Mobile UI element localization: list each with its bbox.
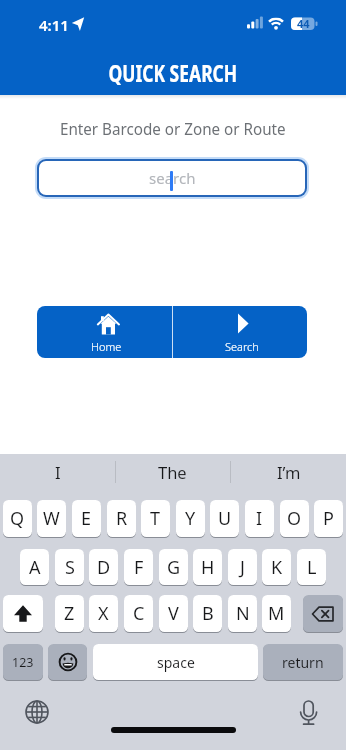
button[interactable]: [303, 595, 343, 632]
staticText: QUICK SEARCH: [108, 57, 238, 85]
staticText: F: [134, 555, 144, 580]
staticText: Enter Barcode or Zone or Route: [60, 118, 286, 140]
staticText: G: [167, 555, 181, 580]
button[interactable]: [37, 306, 172, 358]
staticText: V: [168, 601, 179, 626]
staticText: Q: [10, 506, 25, 531]
staticText: I’m: [277, 461, 301, 483]
button[interactable]: G: [159, 549, 188, 585]
staticText: S: [65, 555, 75, 580]
button[interactable]: F: [124, 549, 153, 585]
staticText: Z: [64, 601, 75, 626]
staticText: R: [116, 506, 128, 531]
button[interactable]: space: [93, 644, 258, 680]
button[interactable]: O: [280, 500, 309, 537]
button[interactable]: B: [193, 595, 222, 632]
staticText: M: [268, 601, 285, 626]
button[interactable]: E: [72, 500, 101, 537]
staticText: The: [158, 461, 187, 483]
staticText: O: [287, 506, 302, 531]
button[interactable]: I: [245, 500, 274, 537]
button[interactable]: H: [193, 549, 222, 585]
staticText: W: [43, 506, 60, 531]
staticText: L: [307, 555, 317, 580]
staticText: 4:11: [39, 15, 69, 33]
button[interactable]: return: [263, 644, 343, 680]
staticText: T: [150, 506, 161, 531]
button[interactable]: U: [210, 500, 239, 537]
staticText: H: [201, 555, 215, 580]
staticText: I: [55, 461, 61, 483]
button[interactable]: 123: [3, 644, 43, 680]
button[interactable]: [172, 306, 307, 358]
staticText: Search: [225, 339, 259, 354]
button[interactable]: [25, 700, 49, 724]
staticText: E: [81, 506, 92, 531]
button[interactable]: [48, 644, 87, 680]
button[interactable]: A: [20, 549, 49, 585]
button[interactable]: S: [55, 549, 84, 585]
button[interactable]: [297, 699, 321, 727]
staticText: I: [256, 506, 263, 531]
button[interactable]: C: [124, 595, 153, 632]
staticText: A: [29, 555, 41, 580]
button[interactable]: W: [37, 500, 66, 537]
button[interactable]: K: [262, 549, 291, 585]
button[interactable]: The: [115, 456, 230, 488]
staticText: 123: [12, 654, 34, 671]
button[interactable]: V: [159, 595, 188, 632]
staticText: 44: [297, 16, 310, 31]
button[interactable]: J: [228, 549, 257, 585]
button[interactable]: I: [0, 456, 115, 488]
staticText: P: [323, 506, 334, 531]
button[interactable]: Y: [176, 500, 205, 537]
button[interactable]: R: [107, 500, 136, 537]
staticText: search: [149, 168, 196, 188]
button[interactable]: T: [141, 500, 170, 537]
staticText: Y: [185, 506, 196, 531]
staticText: J: [240, 555, 245, 580]
staticText: return: [282, 653, 324, 672]
staticText: D: [97, 555, 111, 580]
button[interactable]: N: [228, 595, 257, 632]
staticText: B: [202, 601, 214, 626]
staticText: N: [236, 601, 250, 626]
button[interactable]: D: [89, 549, 118, 585]
button[interactable]: M: [262, 595, 291, 632]
button[interactable]: P: [314, 500, 343, 537]
button[interactable]: Z: [55, 595, 84, 632]
button[interactable]: [3, 595, 43, 632]
button[interactable]: search: [39, 161, 305, 195]
button[interactable]: Q: [3, 500, 32, 537]
button[interactable]: L: [297, 549, 326, 585]
staticText: Home: [91, 339, 122, 354]
button[interactable]: X: [89, 595, 118, 632]
button[interactable]: I’m: [231, 456, 346, 488]
staticText: C: [133, 601, 145, 626]
staticText: K: [271, 555, 283, 580]
staticText: space: [157, 653, 195, 672]
staticText: X: [98, 601, 109, 626]
staticText: U: [218, 506, 232, 531]
